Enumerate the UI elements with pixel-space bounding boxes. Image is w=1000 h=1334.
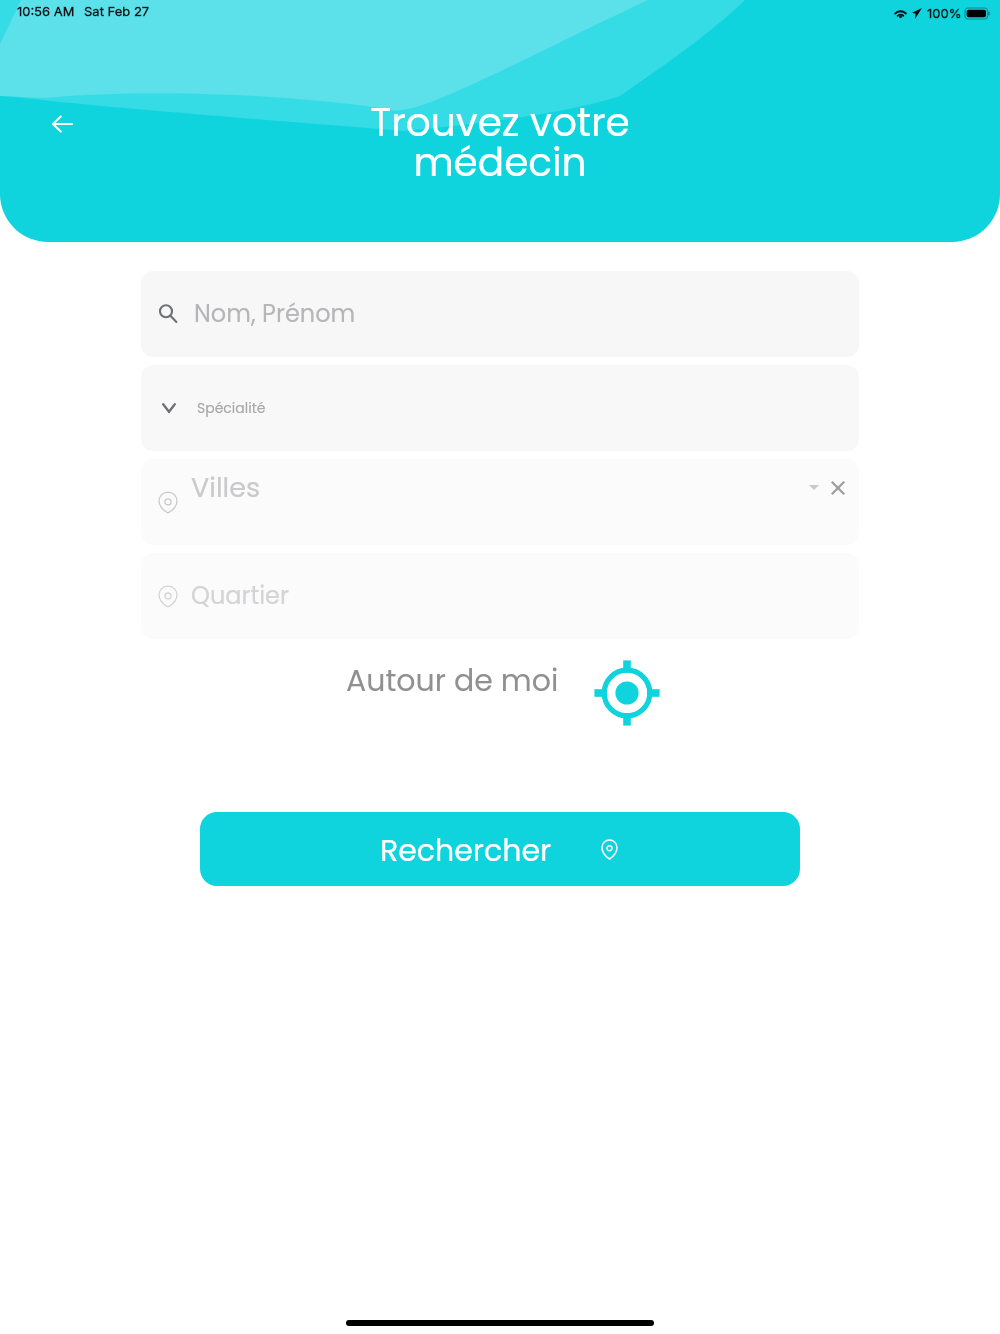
- staticText: Autour de moi: [346, 660, 559, 702]
- staticText: Quartier: [191, 579, 289, 613]
- button[interactable]: Quartier: [141, 553, 859, 639]
- staticText: Villes: [191, 469, 261, 507]
- staticText: Nom, Prénom: [194, 297, 356, 331]
- button[interactable]: Villes: [141, 459, 859, 545]
- button[interactable]: Clear city: [823, 473, 852, 502]
- button[interactable]: Nom, Prénom: [141, 271, 859, 357]
- staticText: 10:56 AM: [17, 3, 75, 19]
- staticText: Sat Feb 27: [84, 3, 150, 19]
- button[interactable]: Autour de moi: [346, 656, 1000, 730]
- button[interactable]: Rechercher: [200, 812, 800, 886]
- staticText: Rechercher: [380, 830, 552, 872]
- other: Use my location: [592, 658, 662, 728]
- staticText: 100%: [927, 5, 962, 21]
- staticText: Trouvez votre médecin: [370, 95, 630, 190]
- button[interactable]: Spécialité: [141, 365, 859, 451]
- button[interactable]: Back: [37, 99, 87, 149]
- staticText: Spécialité: [197, 398, 266, 418]
